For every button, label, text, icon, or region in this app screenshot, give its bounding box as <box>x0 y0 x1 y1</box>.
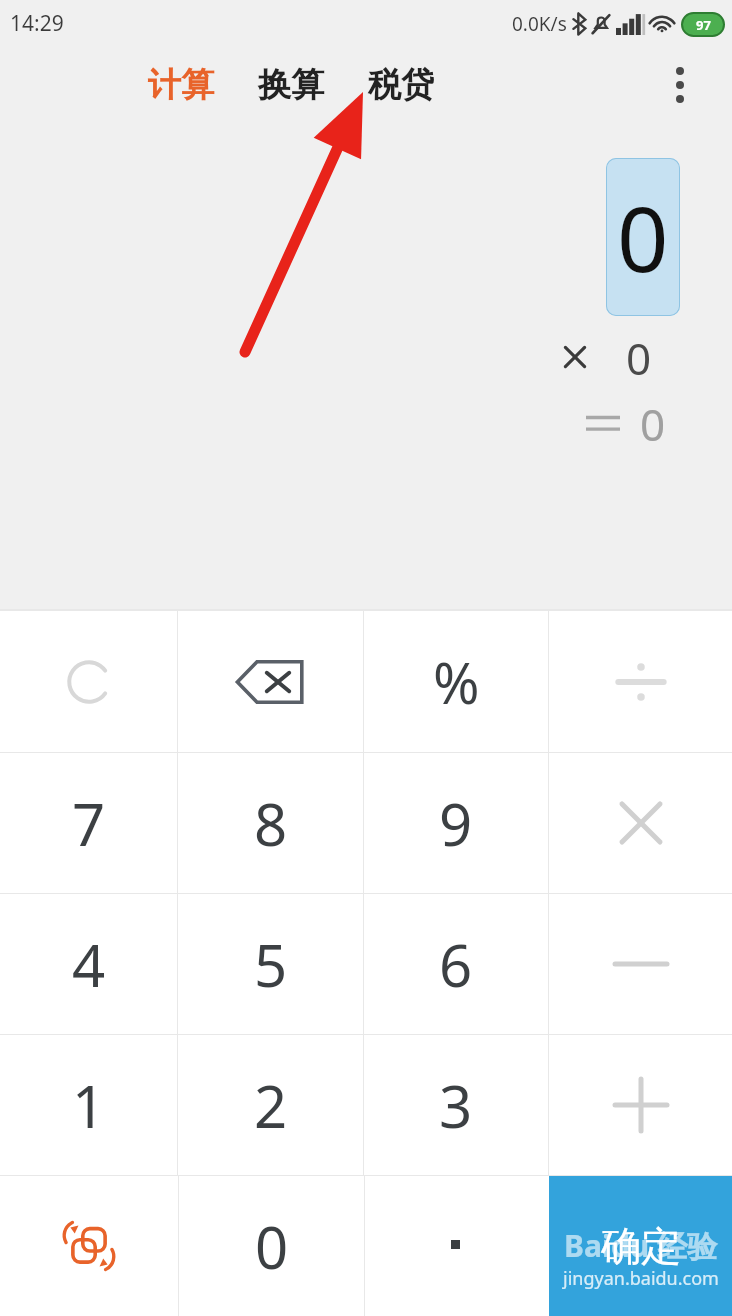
staticText: 0 <box>617 176 669 299</box>
button[interactable]: 税贷 <box>368 47 434 122</box>
button[interactable] <box>365 1176 549 1316</box>
staticText: 6 <box>439 925 473 1004</box>
staticText: 确定 <box>601 1221 681 1271</box>
other: Divide <box>614 660 668 704</box>
staticText: 8 <box>254 784 288 863</box>
staticText: 3 <box>439 1066 473 1145</box>
staticText: 7 <box>72 784 106 863</box>
button[interactable]: 8 <box>178 753 363 893</box>
button[interactable]: 5 <box>178 894 363 1034</box>
staticText: jingyan.baidu.com <box>563 1266 719 1291</box>
staticText: 税贷 <box>368 64 434 106</box>
button[interactable]: 1 <box>0 1035 177 1175</box>
button[interactable]: 0 <box>179 1176 364 1316</box>
button[interactable]: Divide <box>549 611 732 752</box>
staticText: % <box>433 644 480 720</box>
staticText: 97 <box>696 16 711 34</box>
button[interactable]: 换算 <box>258 47 324 122</box>
staticText: 0 <box>255 1207 289 1286</box>
button[interactable]: 3 <box>364 1035 548 1175</box>
button[interactable]: 0 <box>606 158 680 316</box>
staticText: 0 <box>640 394 666 452</box>
staticText: 9 <box>439 784 473 863</box>
staticText: 换算 <box>258 64 324 106</box>
staticText: 1 <box>72 1066 106 1145</box>
button[interactable]: 计算 <box>148 47 214 122</box>
button[interactable]: Plus <box>549 1035 732 1175</box>
staticText: Baidu 经验 <box>564 1225 718 1266</box>
staticText: 0.0K/s <box>512 11 567 37</box>
button[interactable]: 确定 <box>549 1176 732 1316</box>
other: Clear <box>63 656 115 708</box>
staticText: 14:29 <box>10 9 64 38</box>
button[interactable]: 7 <box>0 753 177 893</box>
button[interactable]: Backspace <box>178 611 363 752</box>
staticText: 计算 <box>148 64 214 106</box>
staticText: 0 <box>626 328 652 386</box>
button[interactable]: 6 <box>364 894 548 1034</box>
other: Plus <box>615 1079 667 1131</box>
other: Backspace <box>236 659 306 705</box>
button[interactable]: 9 <box>364 753 548 893</box>
button[interactable]: 4 <box>0 894 177 1034</box>
button[interactable]: 2 <box>178 1035 363 1175</box>
button[interactable]: Minus <box>549 894 732 1034</box>
staticText: 5 <box>254 925 288 1004</box>
button[interactable]: % <box>364 611 548 752</box>
other: Multiply <box>616 798 666 848</box>
button[interactable]: More options <box>658 63 702 107</box>
other: Minus <box>615 959 667 969</box>
button[interactable]: Multiply <box>549 753 732 893</box>
staticText: 4 <box>72 925 106 1004</box>
button[interactable]: Switch unit <box>0 1176 178 1316</box>
other: Switch unit <box>58 1215 120 1277</box>
staticText: 2 <box>254 1066 288 1145</box>
button[interactable]: Clear <box>0 611 177 752</box>
